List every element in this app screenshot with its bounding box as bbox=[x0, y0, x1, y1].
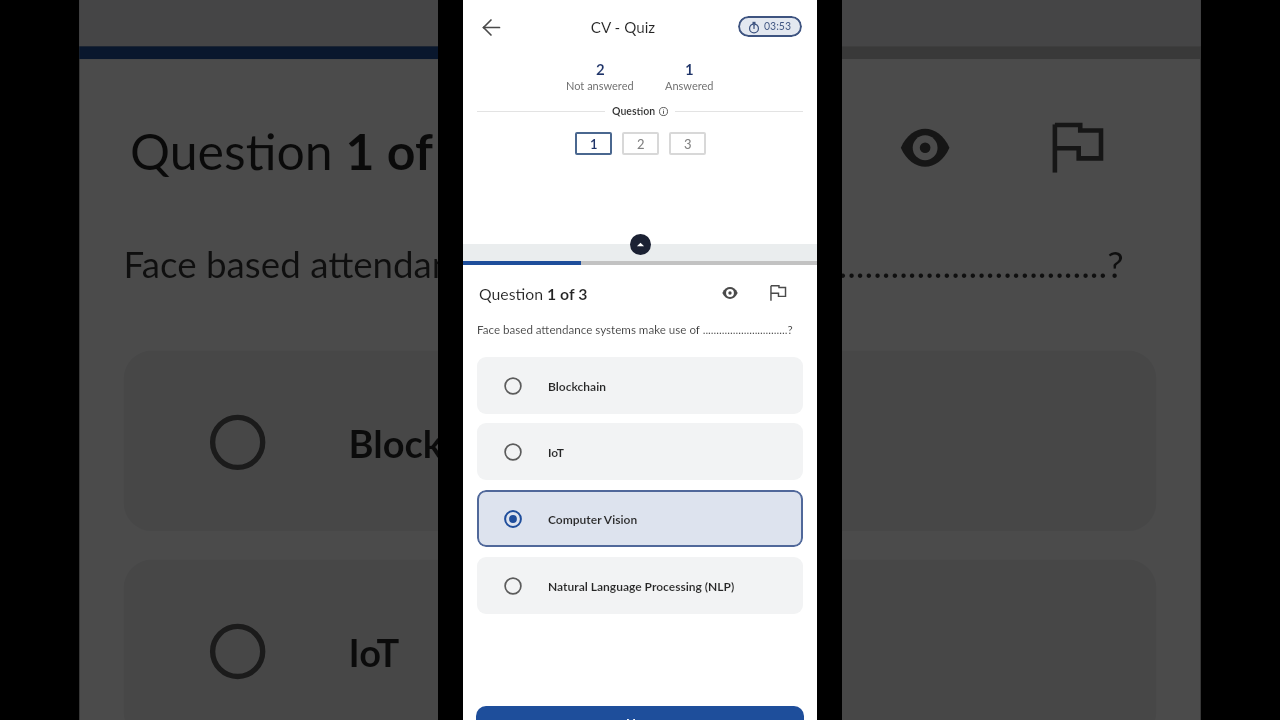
button[interactable]: Blockchain bbox=[477, 357, 803, 414]
staticText: Question bbox=[612, 105, 656, 117]
button[interactable]: Blockchain bbox=[124, 350, 1156, 531]
button[interactable]: Collapse sheet bbox=[608, 0, 675, 27]
staticText: Blockchain bbox=[548, 379, 607, 393]
button[interactable]: Back bbox=[477, 13, 505, 41]
staticText: 2 bbox=[596, 60, 605, 78]
button[interactable]: Computer Vision bbox=[477, 490, 803, 547]
staticText: Face based attendance systems make use o… bbox=[477, 323, 793, 337]
button[interactable]: IoT bbox=[124, 560, 1156, 720]
staticText: 3 bbox=[684, 136, 692, 152]
staticText: Blockchain bbox=[348, 420, 535, 465]
staticText: 1 bbox=[590, 136, 598, 152]
staticText: Natural Language Processing (NLP) bbox=[548, 579, 735, 593]
staticText: 2 bbox=[637, 136, 645, 152]
button[interactable]: Flag question bbox=[1036, 107, 1118, 189]
button[interactable]: IoT bbox=[477, 423, 803, 480]
staticText: Question 1 of 3 bbox=[479, 284, 588, 303]
staticText: Answered bbox=[665, 79, 714, 92]
staticText: 03:53 bbox=[764, 20, 792, 33]
staticText: Not answered bbox=[566, 79, 634, 92]
staticText: Face based attendance systems make use o… bbox=[124, 243, 1125, 287]
button[interactable]: Show answer bbox=[717, 280, 743, 306]
staticText: Next bbox=[626, 716, 655, 720]
button[interactable]: 1 bbox=[575, 132, 612, 155]
staticText: Computer Vision bbox=[548, 512, 638, 526]
button[interactable]: 3 bbox=[669, 132, 706, 155]
button[interactable]: Natural Language Processing (NLP) bbox=[477, 557, 803, 614]
staticText: IoT bbox=[548, 445, 565, 459]
button[interactable]: 2 bbox=[622, 132, 659, 155]
button[interactable]: Collapse sheet bbox=[630, 234, 651, 255]
staticText: CV - Quiz bbox=[446, 18, 800, 36]
button[interactable]: 03:53 bbox=[738, 16, 802, 37]
button[interactable]: Flag question bbox=[765, 280, 791, 306]
button[interactable]: Next bbox=[476, 706, 804, 720]
staticText: IoT bbox=[348, 629, 402, 674]
button[interactable]: Show answer bbox=[884, 107, 966, 189]
staticText: 1 bbox=[685, 60, 694, 78]
staticText: Question 1 of 3 bbox=[130, 119, 475, 179]
